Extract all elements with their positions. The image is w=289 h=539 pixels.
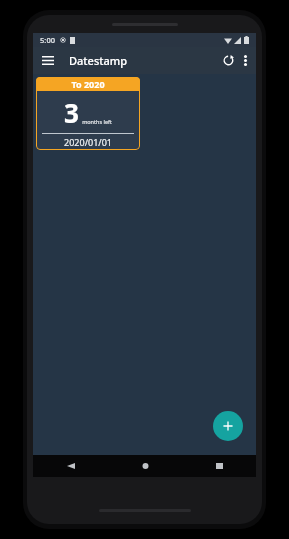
staticText: Datestamp	[69, 53, 127, 68]
button[interactable]: To 2020	[36, 77, 140, 150]
button[interactable]: Add datestamp	[213, 411, 243, 441]
button[interactable]: Home	[134, 455, 157, 477]
staticText: months left	[82, 118, 112, 125]
staticText: 3	[64, 95, 79, 130]
staticText: 2020/01/01	[64, 136, 112, 148]
button[interactable]: Back	[59, 455, 83, 477]
button[interactable]: Open navigation menu	[33, 50, 63, 71]
button[interactable]: Recent apps	[208, 455, 231, 477]
button[interactable]: More options	[240, 49, 256, 72]
staticText: 5:00	[40, 35, 55, 45]
button[interactable]: Refresh	[217, 49, 240, 72]
staticText: To 2020	[71, 78, 105, 90]
